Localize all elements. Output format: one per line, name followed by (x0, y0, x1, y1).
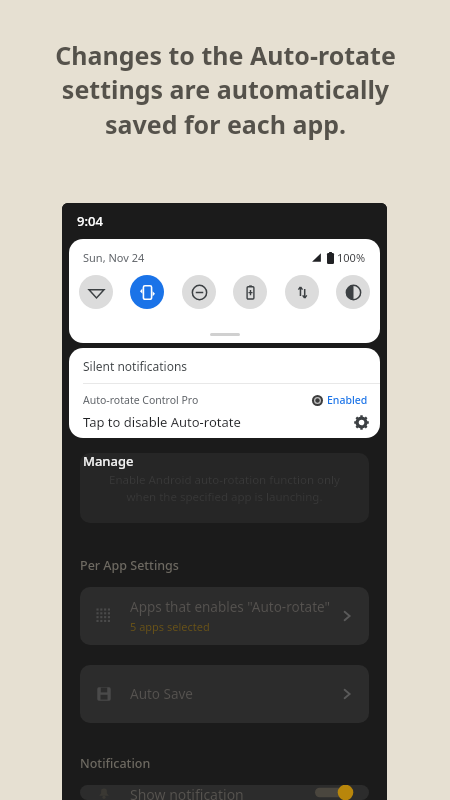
staticText: Tap to disable Auto-rotate (83, 413, 241, 431)
staticText: Per App Settings (80, 557, 179, 574)
staticText: Notification (80, 755, 151, 772)
button[interactable]: Auto Save (80, 665, 369, 723)
button[interactable]: Battery Saver (233, 275, 267, 309)
staticText: Silent notifications (83, 358, 188, 374)
staticText: Show notification (130, 785, 244, 800)
staticText: Enabled (327, 393, 368, 407)
staticText: 100% (337, 250, 366, 265)
staticText: Sun, Nov 24 (83, 250, 145, 265)
staticText: Auto-rotate Control Pro (83, 393, 199, 407)
button[interactable]: Mobile data (285, 275, 319, 309)
staticText: Manage (83, 452, 134, 470)
button[interactable]: Do not disturb (182, 275, 216, 309)
staticText: Auto Save (130, 685, 193, 703)
button[interactable]: Auto-rotate (130, 275, 164, 309)
staticText: Changes to the Auto-rotate settings are … (55, 38, 396, 142)
button[interactable]: Wi-Fi (79, 275, 113, 309)
button[interactable]: Apps that enables "Auto-rotate" (80, 587, 369, 645)
button[interactable]: Auto-rotate Control Pro (69, 384, 380, 438)
staticText: 9:04 (77, 212, 103, 230)
staticText: 5 apps selected (130, 619, 210, 634)
button[interactable]: Show notification (80, 785, 369, 800)
staticText: Enable Android auto-rotation function on… (109, 472, 340, 505)
button[interactable]: Dark theme (336, 275, 370, 309)
staticText: Apps that enables "Auto-rotate" (130, 598, 330, 616)
